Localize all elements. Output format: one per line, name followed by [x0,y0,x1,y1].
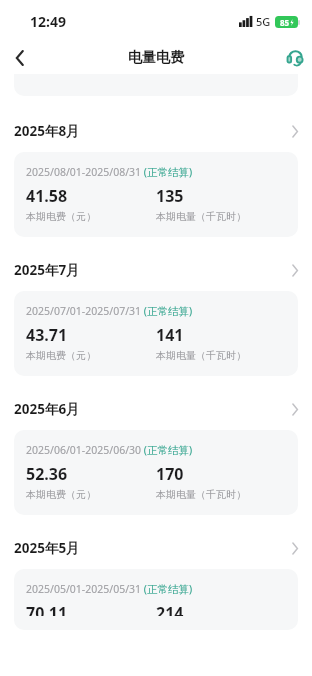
button[interactable]: 2025年6月 [0,396,312,422]
staticText: 41.58 [26,185,68,207]
button[interactable]: Back [0,42,40,74]
staticText: 电量电费 [128,49,184,67]
staticText: 85 [280,17,290,28]
button[interactable]: 2025年8月 [0,118,312,144]
staticText: 2025/06/01-2025/06/30 (正常结算) [26,443,193,457]
staticText: 2025年5月 [14,539,292,557]
button[interactable]: 2025年7月 [0,257,312,283]
staticText: 本期电量（千瓦时） [156,349,246,362]
button[interactable]: 2025/08/01-2025/08/31 (正常结算) [14,152,298,237]
staticText: 2025年6月 [14,400,292,418]
button[interactable]: 2025/07/01-2025/07/31 (正常结算) [14,291,298,376]
staticText: 214 [156,602,184,616]
staticText: 141 [156,324,184,346]
staticText: 本期电量（千瓦时） [156,210,246,223]
staticText: 170 [156,463,184,485]
button[interactable]: 2025/06/01-2025/06/30 (正常结算) [14,430,298,515]
staticText: 本期电量（千瓦时） [156,488,246,501]
staticText: 5G [256,14,271,29]
staticText: 本期电费（元） [26,349,96,362]
staticText: 2025/08/01-2025/08/31 (正常结算) [26,165,193,179]
staticText: 2025/07/01-2025/07/31 (正常结算) [26,304,193,318]
staticText: 43.71 [26,324,68,346]
staticText: 本期电费（元） [26,488,96,501]
button[interactable]: 2025年5月 [0,535,312,561]
staticText: 12:49 [30,12,66,31]
staticText: 2025年7月 [14,261,292,279]
staticText: 70.11 [26,602,68,616]
staticText: 52.36 [26,463,68,485]
staticText: 135 [156,185,184,207]
staticText: 本期电费（元） [26,210,96,223]
staticText: 2025年8月 [14,122,292,140]
button[interactable]: 2025/05/01-2025/05/31 (正常结算) [14,569,298,630]
staticText: 2025/05/01-2025/05/31 (正常结算) [26,582,193,596]
button[interactable]: Customer service [278,42,312,74]
